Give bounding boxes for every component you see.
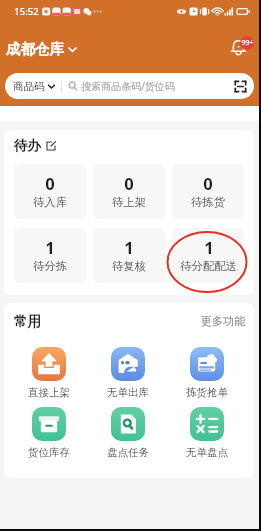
staticText: 常用 (14, 313, 41, 330)
button[interactable]: 1 (93, 228, 165, 283)
staticText: 1 (124, 236, 134, 258)
staticText: 无单出库 (107, 386, 149, 399)
staticText: 待复核 (112, 259, 146, 273)
button[interactable]: 盘点任务 (88, 407, 167, 459)
button[interactable]: 0 (14, 164, 86, 219)
staticText: 待入库 (33, 195, 67, 209)
staticText: 待分拣 (33, 259, 67, 273)
staticText: 待分配配送 (180, 259, 237, 273)
staticText: 1 (204, 236, 214, 258)
button[interactable]: Notifications (226, 36, 252, 62)
button[interactable]: 成都仓库 (5, 37, 78, 61)
button[interactable]: 无单出库 (88, 347, 167, 399)
staticText: 无单盘点 (186, 446, 228, 459)
button[interactable]: 0 (172, 164, 244, 219)
staticText: 搜索商品条码/货位码 (81, 79, 175, 93)
staticText: 盘点任务 (107, 446, 149, 459)
button[interactable]: 待办 (14, 137, 56, 154)
button[interactable]: 拣货抢单 (167, 347, 246, 399)
staticText: 99+ (241, 38, 254, 48)
button[interactable]: 直接上架 (10, 347, 88, 399)
staticText: 拣货抢单 (186, 386, 228, 399)
button[interactable]: 1 (172, 228, 244, 283)
staticText: 待办 (14, 137, 41, 154)
button[interactable]: Scan barcode (233, 79, 247, 93)
button[interactable]: 无单盘点 (167, 407, 246, 459)
staticText: 更多功能 (200, 314, 246, 328)
staticText: 待上架 (112, 195, 146, 209)
staticText: 商品码 (13, 80, 45, 93)
staticText: 0 (45, 172, 55, 194)
staticText: 1 (45, 236, 55, 258)
staticText: 货位库存 (28, 446, 70, 459)
button[interactable]: 更多功能 (194, 312, 246, 330)
staticText: 成都仓库 (6, 40, 64, 58)
button[interactable]: 1 (14, 228, 86, 283)
staticText: 0 (203, 172, 213, 194)
button[interactable]: 货位库存 (10, 407, 88, 459)
button[interactable]: 商品码 (5, 73, 254, 99)
staticText: 15:52 (14, 5, 39, 18)
staticText: 待拣货 (191, 195, 225, 209)
button[interactable]: 0 (93, 164, 165, 219)
staticText: 0 (124, 172, 134, 194)
staticText: 直接上架 (28, 386, 70, 399)
